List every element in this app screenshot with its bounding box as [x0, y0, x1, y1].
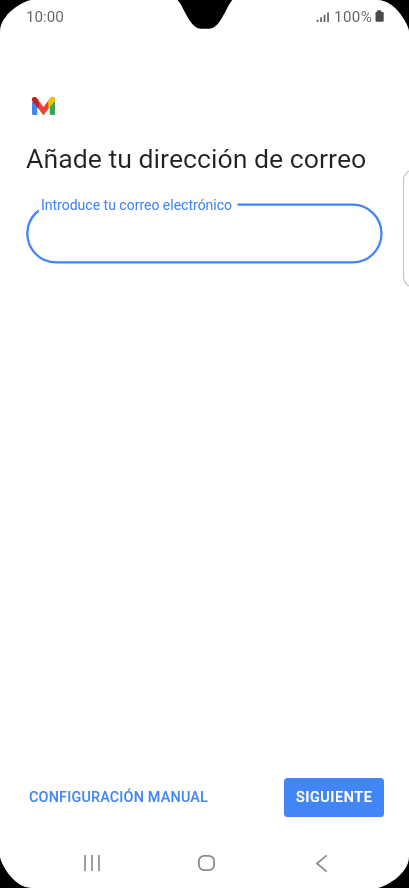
staticText: CONFIGURACIÓN MANUAL — [29, 789, 209, 806]
button[interactable]: Recents — [62, 838, 122, 888]
button[interactable]: Back — [291, 838, 351, 888]
staticText: 10:00 — [26, 8, 64, 26]
staticText: SIGUIENTE — [296, 789, 373, 806]
staticText: Añade tu dirección de correo — [26, 143, 367, 174]
button[interactable]: CONFIGURACIÓN MANUAL — [17, 781, 221, 814]
button[interactable]: Home — [177, 838, 237, 888]
staticText: 100% — [334, 8, 373, 26]
button[interactable]: SIGUIENTE — [284, 778, 384, 817]
staticText: Introduce tu correo electrónico — [41, 197, 233, 213]
